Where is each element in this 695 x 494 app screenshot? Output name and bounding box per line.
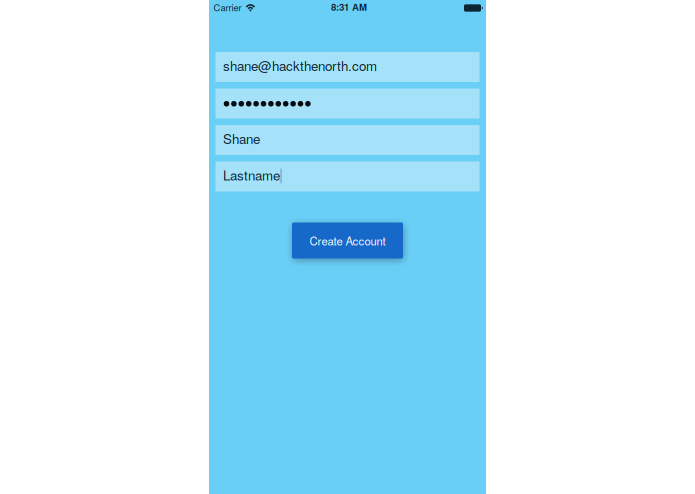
- staticText: 8:31 AM: [331, 0, 367, 14]
- staticText: shane@hackthenorth.com: [223, 56, 377, 75]
- button[interactable]: Email: [215, 52, 479, 82]
- button[interactable]: Last name: [215, 161, 479, 191]
- staticText: Shane: [223, 129, 260, 148]
- button[interactable]: Create Account: [292, 222, 403, 258]
- button[interactable]: Password: [215, 88, 479, 118]
- staticText: Carrier: [213, 1, 241, 14]
- staticText: Create Account: [309, 232, 385, 249]
- button[interactable]: First name: [215, 125, 479, 155]
- staticText: Lastname: [223, 165, 280, 184]
